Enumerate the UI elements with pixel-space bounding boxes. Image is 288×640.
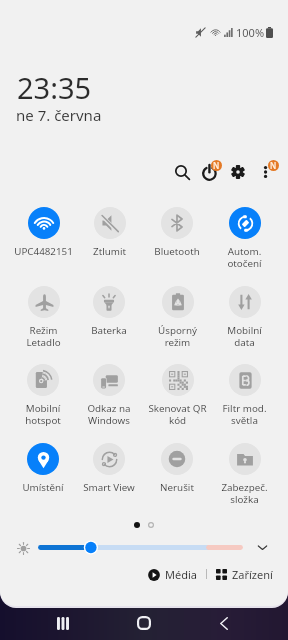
- staticText: 100%: [236, 25, 265, 39]
- button[interactable]: UPC4482151: [10, 207, 76, 269]
- button[interactable]: Zabezpeč. složka: [211, 443, 277, 505]
- staticText: 23:35: [17, 68, 92, 107]
- button[interactable]: Mobilní hotspot: [10, 364, 76, 426]
- button[interactable]: Zařízení: [216, 567, 273, 582]
- button[interactable]: Skenovat QR kód: [144, 364, 210, 426]
- button[interactable]: Power off: [197, 158, 225, 186]
- staticText: N: [270, 160, 277, 171]
- staticText: ne 7. června: [16, 105, 102, 125]
- button[interactable]: Média: [148, 567, 197, 582]
- button[interactable]: Back: [204, 606, 244, 640]
- staticText: Mobilní hotspot: [25, 402, 61, 426]
- staticText: Autom. otočení: [227, 245, 262, 269]
- staticText: Zařízení: [232, 567, 273, 582]
- button[interactable]: Brightness slider: [38, 538, 243, 557]
- staticText: UPC4482151: [14, 245, 73, 258]
- button[interactable]: Baterka: [76, 286, 142, 348]
- button[interactable]: Autom. otočení: [211, 207, 277, 269]
- staticText: Mobilní data: [227, 324, 262, 348]
- staticText: N: [213, 160, 220, 171]
- button[interactable]: Umístění: [10, 443, 76, 505]
- button[interactable]: Bluetooth: [144, 207, 210, 269]
- staticText: Režim Letadlo: [26, 324, 61, 348]
- button[interactable]: Brightness: [11, 536, 36, 561]
- button[interactable]: Nerušit: [144, 443, 210, 505]
- staticText: Média: [165, 567, 197, 582]
- staticText: Ztlumit: [93, 245, 126, 258]
- button[interactable]: Home: [124, 606, 164, 640]
- staticText: Smart View: [83, 481, 135, 494]
- staticText: Baterka: [91, 324, 127, 337]
- button[interactable]: Smart View: [76, 443, 142, 505]
- staticText: Skenovat QR kód: [148, 402, 207, 426]
- button[interactable]: Odkaz na Windows: [76, 364, 142, 426]
- button[interactable]: Search: [168, 158, 196, 186]
- button[interactable]: Úsporný režim: [144, 286, 210, 348]
- button[interactable]: Ztlumit: [76, 207, 142, 269]
- button[interactable]: Expand: [252, 537, 273, 558]
- staticText: Úsporný režim: [158, 324, 197, 348]
- staticText: Nerušit: [160, 481, 194, 494]
- staticText: Filtr mod. světla: [222, 402, 267, 426]
- button[interactable]: Filtr mod. světla: [211, 364, 277, 426]
- staticText: Zabezpeč. složka: [221, 481, 268, 505]
- button[interactable]: Recents: [43, 606, 83, 640]
- button[interactable]: Režim Letadlo: [10, 286, 76, 348]
- button[interactable]: Settings: [224, 158, 252, 186]
- button[interactable]: More options: [253, 158, 281, 186]
- staticText: Bluetooth: [154, 245, 200, 258]
- staticText: Odkaz na Windows: [87, 402, 131, 426]
- staticText: Umístění: [22, 481, 64, 494]
- button[interactable]: Mobilní data: [211, 286, 277, 348]
